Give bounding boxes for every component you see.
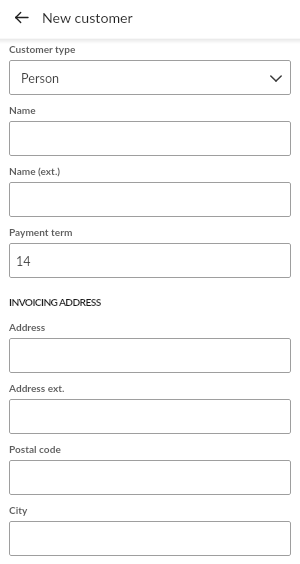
button[interactable]	[9, 182, 291, 217]
button[interactable]: 14	[9, 243, 291, 278]
button[interactable]: Person	[9, 60, 291, 95]
button[interactable]	[9, 338, 291, 373]
staticText: Payment term	[9, 226, 73, 238]
staticText: Name	[9, 104, 36, 116]
button[interactable]: Back	[0, 0, 39, 35]
staticText: Address	[9, 321, 46, 333]
staticText: INVOICING ADDRESS	[9, 296, 101, 308]
staticText: Address ext.	[9, 382, 65, 394]
staticText: City	[9, 504, 28, 516]
staticText: 14	[16, 254, 31, 269]
staticText: Name (ext.)	[9, 165, 61, 177]
staticText: New customer	[42, 9, 133, 26]
staticText: Customer type	[9, 43, 76, 55]
staticText: Postal code	[9, 443, 61, 455]
button[interactable]	[9, 521, 291, 556]
button[interactable]	[9, 399, 291, 434]
button[interactable]	[9, 460, 291, 495]
staticText: Person	[21, 71, 60, 86]
button[interactable]	[9, 121, 291, 156]
